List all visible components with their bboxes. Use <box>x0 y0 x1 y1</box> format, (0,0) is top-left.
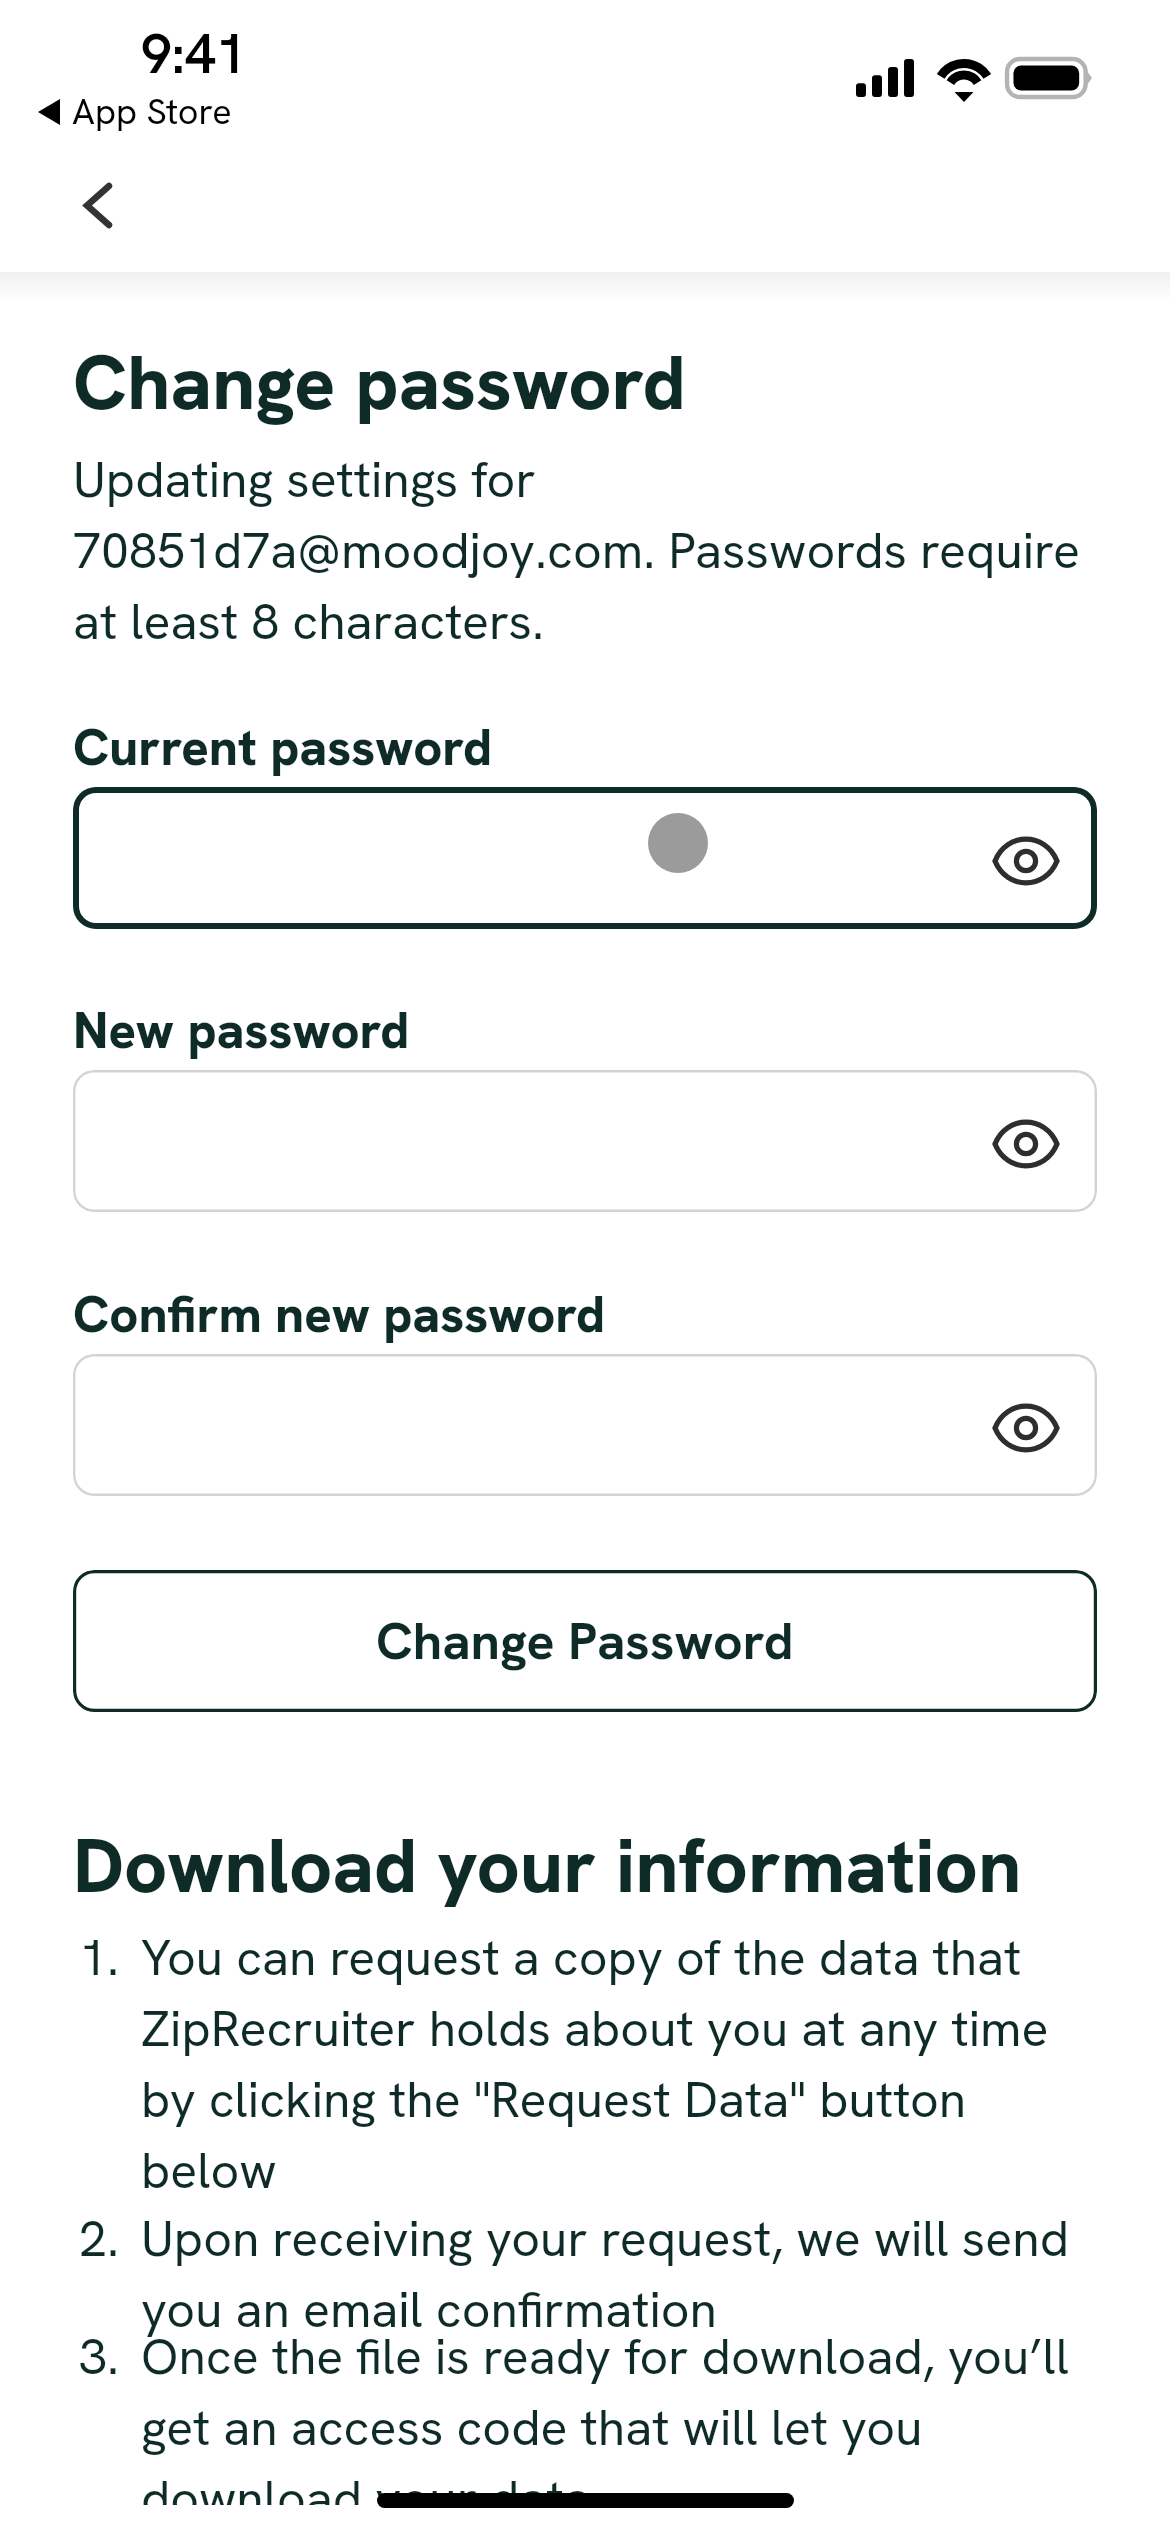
staticText: Change Password <box>376 1607 794 1675</box>
button[interactable]: Show password <box>974 1373 1078 1483</box>
staticText: Upon receiving your request, we will sen… <box>141 2202 1097 2344</box>
staticText: 2. <box>79 2202 119 2273</box>
button[interactable]: Back <box>57 163 137 243</box>
staticText: Confirm new password <box>73 1287 606 1345</box>
staticText: Updating settings for 70851d7a@moodjoy.c… <box>73 443 1097 656</box>
staticText: Current password <box>73 720 493 778</box>
staticText: 3. <box>79 2320 119 2391</box>
staticText: Download your information <box>73 1828 1022 1912</box>
button[interactable]: Change Password <box>73 1570 1097 1712</box>
staticText: New password <box>73 1003 410 1061</box>
button[interactable]: Show password <box>974 806 1078 916</box>
staticText: App Store <box>72 88 232 135</box>
staticText: 1. <box>79 1921 119 1992</box>
staticText: 9:41 <box>141 18 247 90</box>
button[interactable]: Show password <box>73 1354 1097 1496</box>
button[interactable]: Show password <box>974 1089 1078 1199</box>
staticText: You can request a copy of the data that … <box>141 1921 1097 2205</box>
button[interactable]: Show password <box>73 1070 1097 1212</box>
button[interactable]: Show password <box>73 787 1097 929</box>
staticText: Change password <box>73 345 686 429</box>
staticText: Once the file is ready for download, you… <box>141 2320 1097 2505</box>
